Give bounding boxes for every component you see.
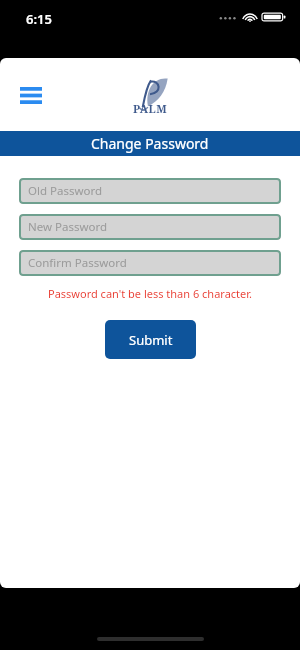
staticText: Submit xyxy=(129,331,173,349)
staticText: PALM xyxy=(133,101,168,116)
button[interactable]: Confirm Password xyxy=(19,250,281,276)
button[interactable]: Submit xyxy=(105,320,196,359)
staticText: 6:15 xyxy=(26,10,52,28)
button[interactable]: Open navigation menu xyxy=(12,76,50,114)
staticText: Confirm Password xyxy=(28,255,127,271)
staticText: New Password xyxy=(28,219,108,235)
button[interactable]: Old Password xyxy=(19,178,281,204)
staticText: Password can't be less than 6 character. xyxy=(0,286,300,301)
button[interactable]: New Password xyxy=(19,214,281,240)
staticText: Old Password xyxy=(28,183,103,199)
staticText: Change Password xyxy=(91,134,209,153)
